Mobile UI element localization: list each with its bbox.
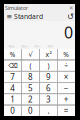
staticText: √ — [29, 50, 33, 58]
button[interactable]: 0 — [4, 105, 21, 116]
button[interactable]: 6 — [40, 83, 57, 93]
button[interactable]: . — [40, 105, 57, 116]
staticText: × — [64, 72, 69, 82]
button[interactable]: mr — [44, 43, 57, 48]
staticText: Standard — [14, 12, 43, 21]
button[interactable]: mc — [5, 43, 18, 48]
button[interactable]: 1 — [4, 94, 21, 105]
button[interactable]: x² — [40, 49, 57, 60]
staticText: 4 — [10, 83, 15, 93]
staticText: . — [47, 105, 49, 116]
staticText: ⌫ — [8, 62, 17, 69]
button[interactable]: ÷ — [58, 60, 75, 71]
button[interactable]: 3 — [40, 94, 57, 105]
staticText: 6 — [46, 83, 51, 93]
button[interactable]: + — [58, 94, 75, 105]
staticText: 9 — [46, 72, 51, 82]
staticText: 1 — [10, 94, 15, 105]
button[interactable]: m− — [31, 43, 44, 48]
button[interactable]: ) — [40, 60, 57, 71]
staticText: 0 — [28, 105, 33, 116]
staticText: 0 — [64, 22, 73, 43]
button[interactable]: 8 — [22, 71, 39, 82]
staticText: ≡ — [6, 13, 12, 20]
staticText: 3 — [46, 94, 51, 105]
staticText: 2 — [28, 94, 33, 105]
staticText: + — [64, 94, 69, 105]
staticText: x² — [45, 50, 51, 59]
staticText: ✕ — [69, 5, 73, 11]
button[interactable]: History — [67, 13, 74, 20]
button[interactable]: = — [58, 105, 75, 116]
staticText: % — [63, 50, 69, 59]
button[interactable]: 5 — [22, 83, 39, 93]
staticText: − — [64, 83, 69, 93]
button[interactable]: 9 — [40, 71, 57, 82]
staticText: ÷ — [64, 61, 68, 70]
staticText: 5 — [28, 83, 33, 93]
button[interactable]: √ — [22, 49, 39, 60]
button[interactable]: m+ — [18, 43, 31, 48]
staticText: mc — [8, 43, 14, 49]
button[interactable]: ⌫ — [4, 60, 21, 71]
staticText: Simulator — [5, 4, 28, 12]
staticText: ) — [47, 61, 49, 70]
staticText: = — [64, 105, 69, 116]
button[interactable]: × — [58, 71, 75, 82]
button[interactable]: 0 — [22, 105, 39, 116]
staticText: 7 — [10, 72, 15, 82]
staticText: m− — [34, 43, 40, 49]
button[interactable]: % — [4, 49, 21, 60]
button[interactable]: Menu — [6, 13, 13, 20]
button[interactable]: Close — [68, 5, 74, 11]
button[interactable]: 4 — [4, 83, 21, 93]
staticText: % — [10, 50, 16, 59]
button[interactable]: % — [58, 49, 75, 60]
staticText: mr — [47, 43, 53, 49]
button[interactable]: 7 — [4, 71, 21, 82]
staticText: m+ — [21, 43, 27, 49]
staticText: 8 — [28, 72, 33, 82]
button[interactable]: 2 — [22, 94, 39, 105]
staticText: ↺ — [67, 12, 74, 21]
button[interactable]: − — [58, 83, 75, 93]
staticText: 0 — [10, 105, 15, 116]
staticText: ( — [30, 61, 32, 70]
button[interactable]: ( — [22, 60, 39, 71]
